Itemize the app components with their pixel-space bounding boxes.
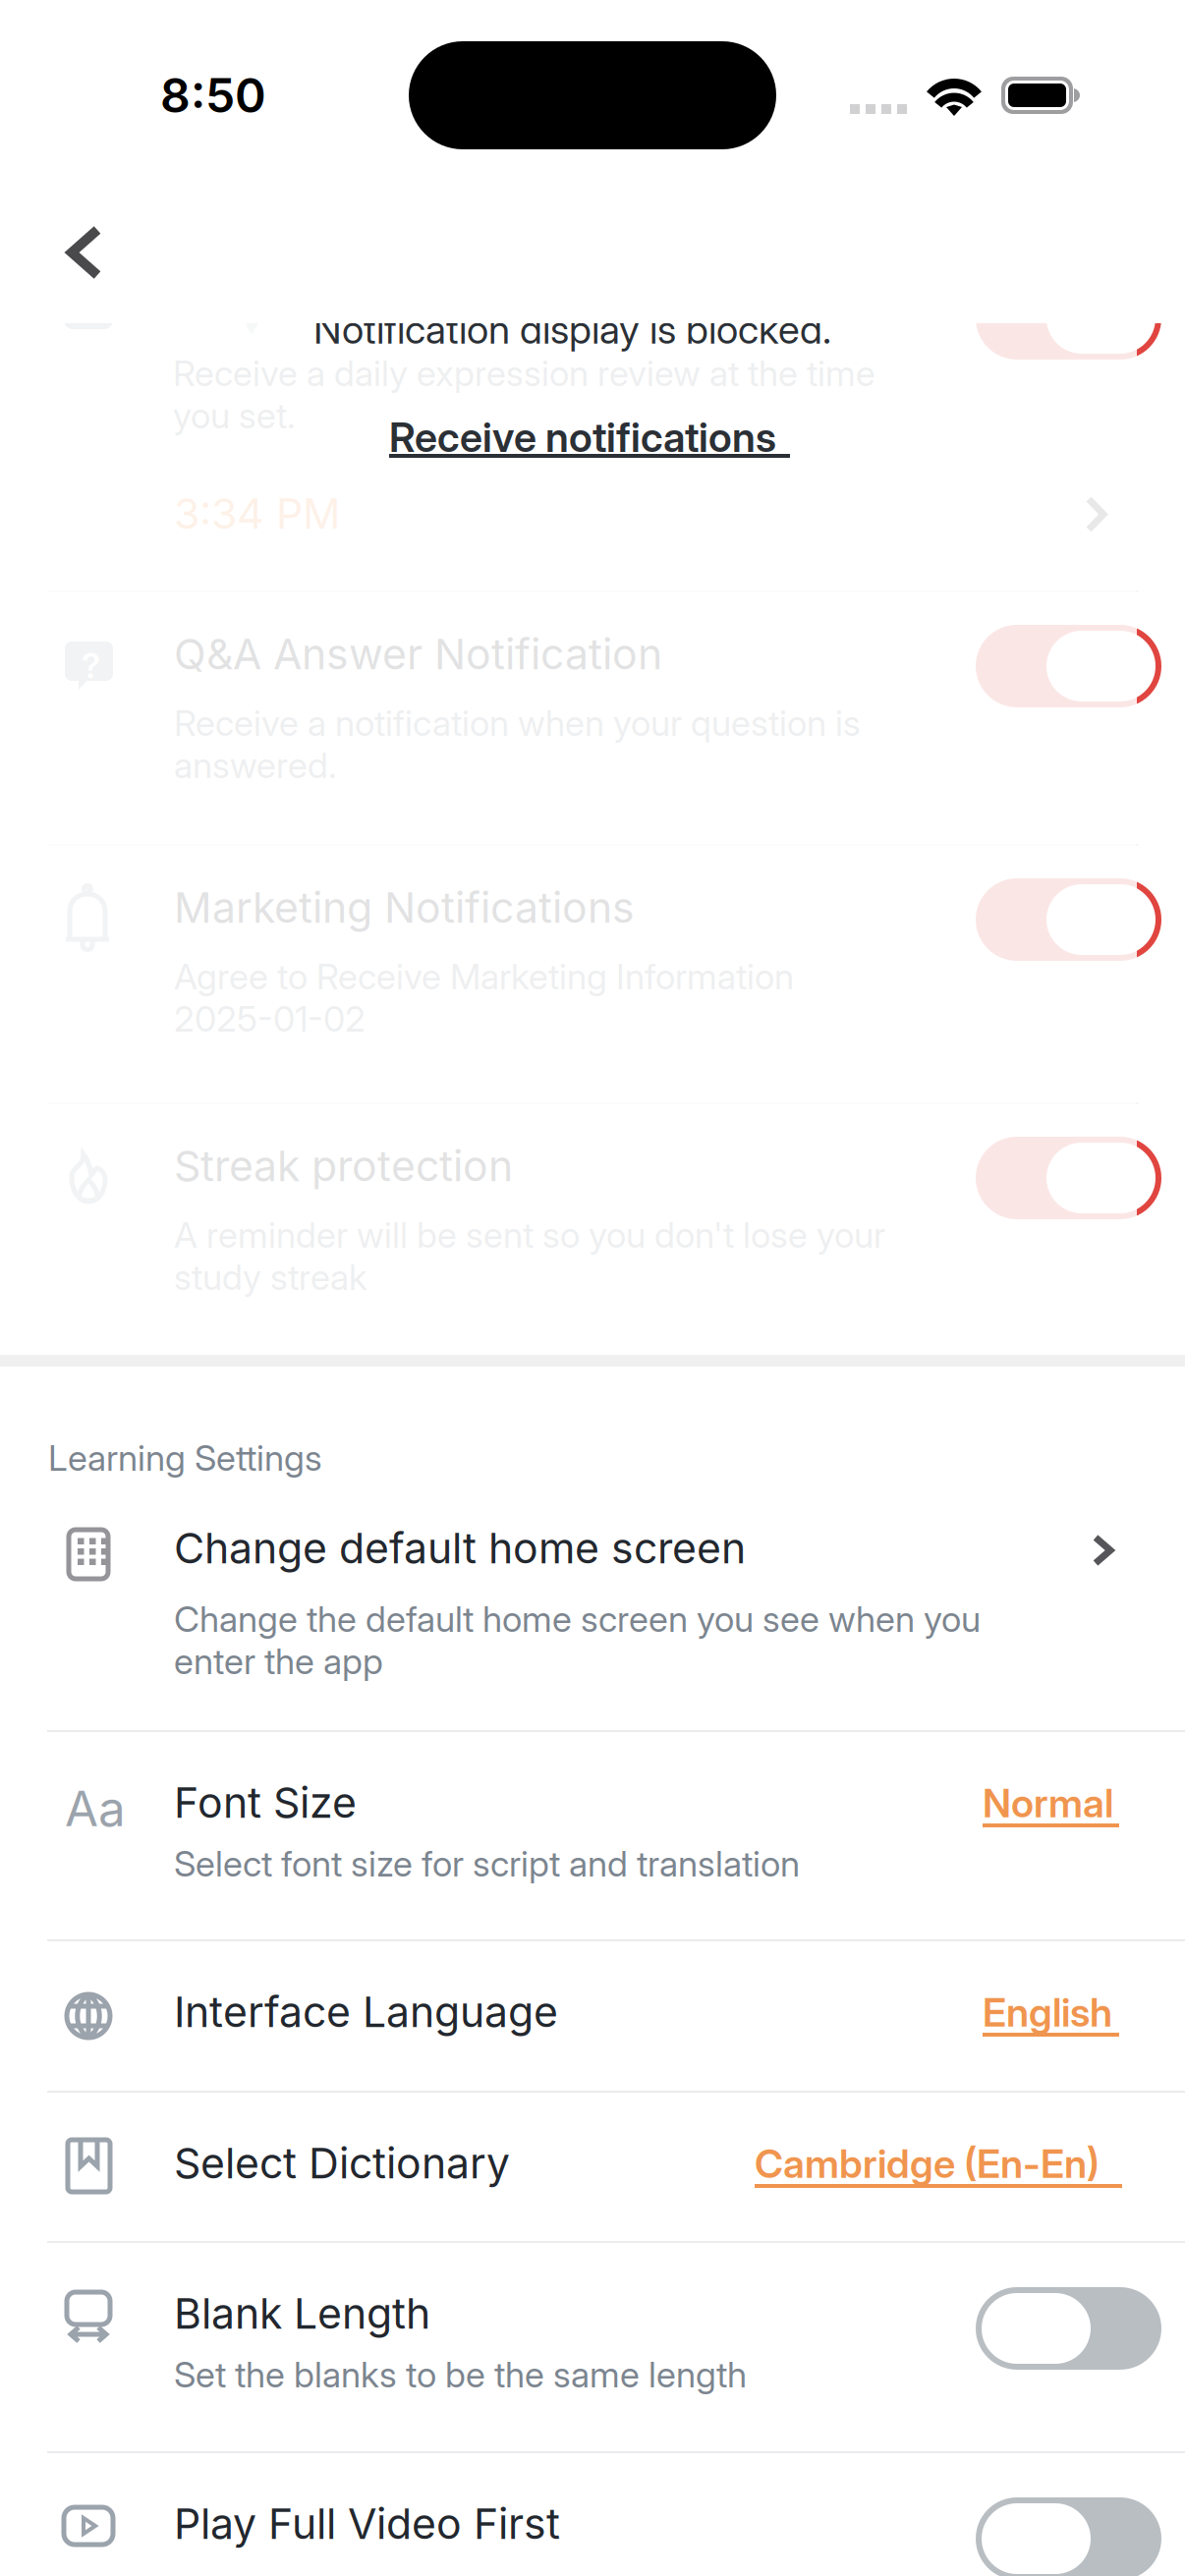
button[interactable]: Back bbox=[11, 189, 158, 316]
staticText: enter the app bbox=[174, 1640, 383, 1683]
staticText: 2025-01-02 bbox=[174, 997, 366, 1040]
button[interactable]: Select Dictionary bbox=[0, 2091, 1185, 2241]
staticText: Change the default home screen you see w… bbox=[174, 1597, 981, 1640]
button[interactable]: Blank Length bbox=[0, 2241, 1185, 2451]
staticText: Q&A Answer Notification bbox=[174, 629, 662, 679]
staticText: ? bbox=[82, 645, 100, 687]
staticText: Receive notifications bbox=[389, 413, 776, 462]
button[interactable]: Interface Language bbox=[0, 1939, 1185, 2091]
staticText: Select Dictionary bbox=[174, 2138, 510, 2189]
button[interactable]: Change default home screen bbox=[0, 1493, 1185, 1730]
staticText: Select font size for script and translat… bbox=[174, 1842, 800, 1885]
staticText: Streak protection bbox=[174, 1141, 513, 1191]
staticText: answered. bbox=[174, 744, 337, 787]
button[interactable]: Play Full Video First bbox=[0, 2451, 1185, 2576]
staticText: English bbox=[983, 1988, 1112, 2036]
staticText: Notification display is blocked. bbox=[313, 306, 831, 353]
staticText: Blank Length bbox=[174, 2288, 430, 2339]
staticText: Receive a notification when your questio… bbox=[174, 701, 861, 744]
staticText: Learning Settings bbox=[48, 1436, 322, 1479]
staticText: Interface Language bbox=[174, 1987, 558, 2037]
staticText: 8:50 bbox=[160, 67, 266, 124]
staticText: Agree to Receive Marketing Information bbox=[174, 955, 794, 998]
staticText: 3:34 PM bbox=[174, 488, 341, 539]
staticText: Normal bbox=[983, 1779, 1113, 1827]
staticText: Receive a daily expression review at the… bbox=[173, 352, 875, 395]
staticText: Font Size bbox=[174, 1777, 357, 1828]
staticText: Play Full Video First bbox=[174, 2498, 560, 2549]
button[interactable]: Aa bbox=[0, 1730, 1185, 1939]
staticText: Change default home screen bbox=[174, 1523, 746, 1574]
staticText: study streak bbox=[174, 1256, 367, 1298]
staticText: you set. bbox=[173, 394, 296, 437]
staticText: Marketing Notifications bbox=[174, 882, 635, 933]
staticText: Set the blanks to be the same length bbox=[174, 2353, 747, 2396]
staticText: A reminder will be sent so you don't los… bbox=[174, 1213, 885, 1256]
staticText: Aa bbox=[65, 1779, 126, 1838]
button[interactable]: Receive notifications bbox=[389, 411, 798, 466]
staticText: Cambridge (En-En) bbox=[755, 2140, 1100, 2187]
